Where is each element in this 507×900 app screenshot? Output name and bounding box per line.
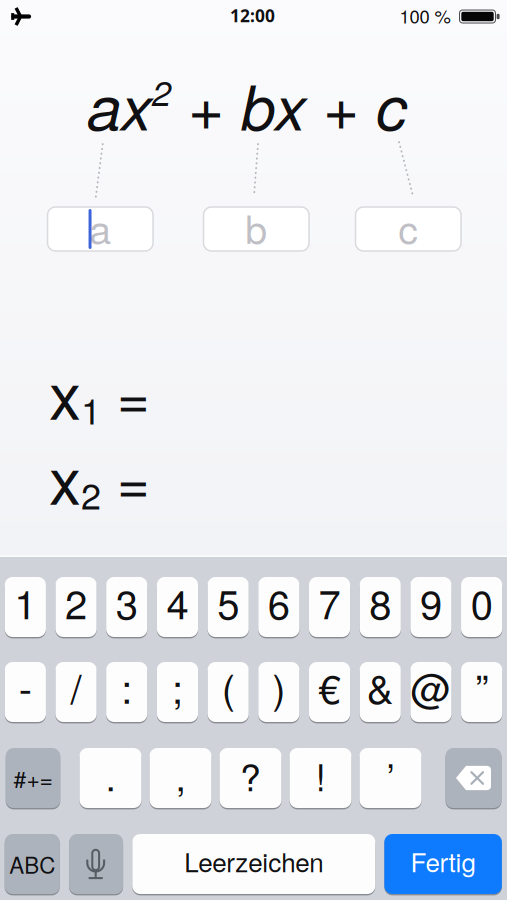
staticText: 4 (166, 573, 188, 631)
button[interactable]: 2 (55, 577, 97, 637)
staticText: € (319, 658, 341, 715)
button[interactable]: 5 (208, 577, 249, 637)
button[interactable]: Löschen (445, 748, 501, 808)
button[interactable]: : (106, 662, 147, 722)
button[interactable]: 9 (410, 577, 452, 637)
staticText: ” (475, 658, 488, 715)
staticText: : (121, 658, 132, 715)
staticText: #+= (13, 762, 52, 794)
button[interactable]: , (149, 748, 211, 808)
button[interactable]: ? (219, 748, 281, 808)
staticText: ax2 + bx + c (87, 62, 407, 147)
button[interactable]: ( (208, 662, 249, 722)
button[interactable]: ! (289, 748, 351, 808)
staticText: 7 (319, 573, 341, 631)
staticText: 0 (471, 573, 493, 631)
staticText: a (89, 199, 111, 256)
staticText: x2 = (49, 432, 150, 522)
button[interactable]: @ (410, 662, 452, 722)
button[interactable]: Diktieren (69, 834, 123, 894)
staticText: ’ (386, 748, 394, 802)
staticText: , (175, 748, 185, 802)
staticText: / (71, 658, 82, 715)
staticText: c (398, 199, 418, 256)
button[interactable]: Koeffizient c (356, 207, 461, 251)
staticText: 1 (14, 573, 36, 631)
staticText: . (105, 748, 115, 802)
button[interactable]: - (5, 662, 46, 722)
staticText: Fertig (411, 842, 476, 880)
staticText: x1 = (49, 347, 150, 437)
button[interactable]: Koeffizient b (204, 207, 309, 251)
staticText: 5 (217, 573, 239, 631)
button[interactable]: ABC (5, 834, 60, 894)
staticText: - (19, 658, 32, 715)
staticText: 8 (369, 573, 391, 631)
button[interactable]: 4 (157, 577, 198, 637)
staticText: Leerzeichen (184, 842, 323, 880)
staticText: ? (240, 748, 261, 802)
button[interactable]: Fertig (384, 834, 502, 894)
button[interactable]: 6 (258, 577, 299, 637)
button[interactable]: & (360, 662, 401, 722)
staticText: b (245, 199, 267, 256)
staticText: 9 (420, 573, 442, 631)
staticText: @ (410, 658, 451, 715)
staticText: 3 (116, 573, 138, 631)
button[interactable]: ’ (359, 748, 421, 808)
staticText: ABC (9, 848, 55, 880)
button[interactable]: / (55, 662, 97, 722)
button[interactable]: 0 (461, 577, 502, 637)
button[interactable]: ” (461, 662, 502, 722)
staticText: & (367, 658, 394, 715)
staticText: ( (222, 658, 235, 715)
button[interactable]: ) (258, 662, 299, 722)
staticText: ! (315, 748, 325, 802)
button[interactable]: Koeffizient a (47, 207, 153, 251)
button[interactable]: ; (157, 662, 198, 722)
staticText: 12:00 (230, 4, 275, 27)
staticText: 6 (268, 573, 290, 631)
button[interactable]: Leerzeichen (132, 834, 375, 894)
button[interactable]: . (79, 748, 141, 808)
button[interactable]: 7 (309, 577, 350, 637)
staticText: ; (172, 658, 183, 715)
button[interactable]: 1 (5, 577, 46, 637)
staticText: ) (272, 658, 285, 715)
button[interactable]: 3 (106, 577, 147, 637)
button[interactable]: #+= (6, 748, 60, 808)
staticText: 100 % (399, 2, 450, 29)
button[interactable]: € (309, 662, 350, 722)
button[interactable]: 8 (360, 577, 401, 637)
staticText: 2 (65, 573, 87, 631)
